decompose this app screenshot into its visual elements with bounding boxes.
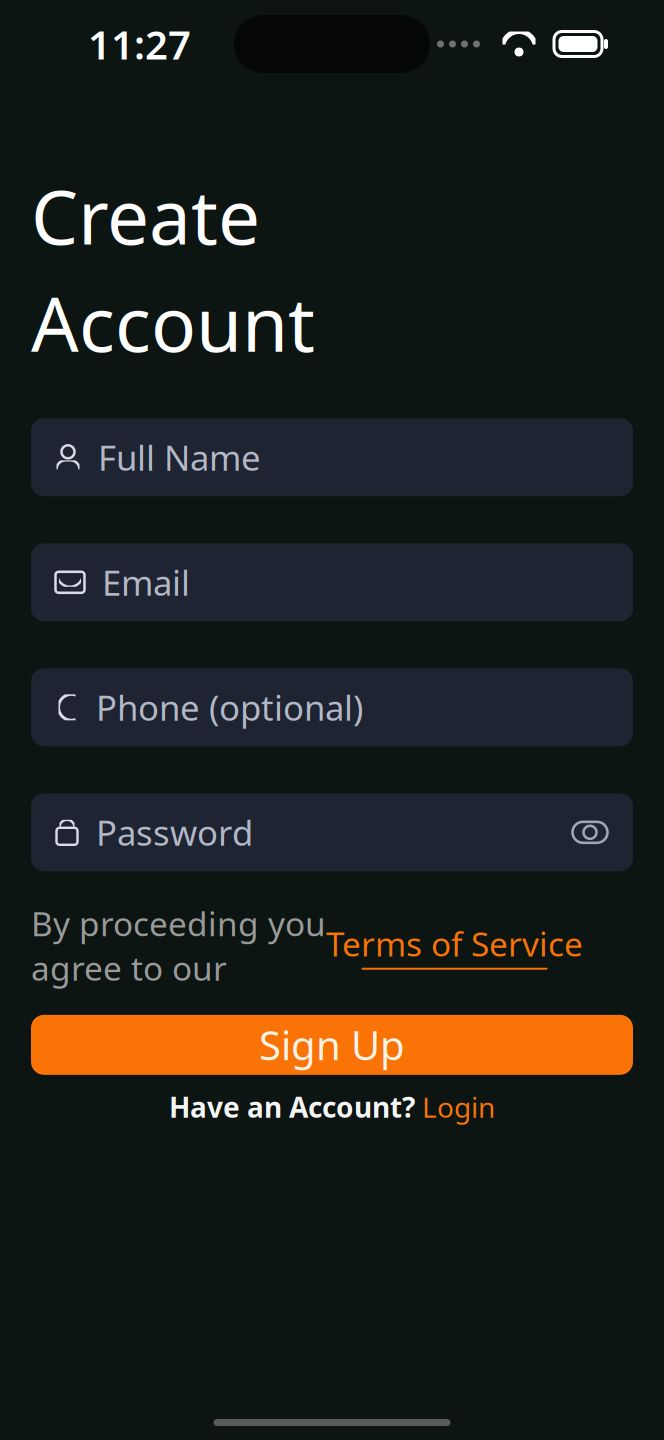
button[interactable]: Phone (optional) bbox=[31, 668, 633, 746]
button[interactable]: Have an Account? bbox=[169, 1091, 495, 1123]
staticText: Create bbox=[31, 166, 260, 265]
staticText: Sign Up bbox=[259, 1018, 405, 1071]
staticText: Have an Account? bbox=[169, 1088, 415, 1125]
button[interactable]: Email bbox=[31, 543, 633, 621]
staticText: 11:27 bbox=[88, 17, 191, 70]
staticText: By proceeding you agree to our bbox=[31, 901, 326, 990]
staticText: Account bbox=[31, 273, 315, 372]
button[interactable]: Password bbox=[31, 793, 633, 871]
button[interactable]: Terms of Service bbox=[326, 921, 583, 970]
staticText: Full Name bbox=[98, 434, 261, 480]
button[interactable]: Full Name bbox=[31, 418, 633, 496]
staticText: Terms of Service bbox=[326, 921, 583, 966]
staticText: Email bbox=[102, 559, 190, 605]
button[interactable]: Sign Up bbox=[31, 1015, 633, 1075]
staticText: Phone (optional) bbox=[96, 684, 363, 730]
staticText: Login bbox=[422, 1088, 495, 1125]
staticText: Password bbox=[96, 809, 253, 855]
